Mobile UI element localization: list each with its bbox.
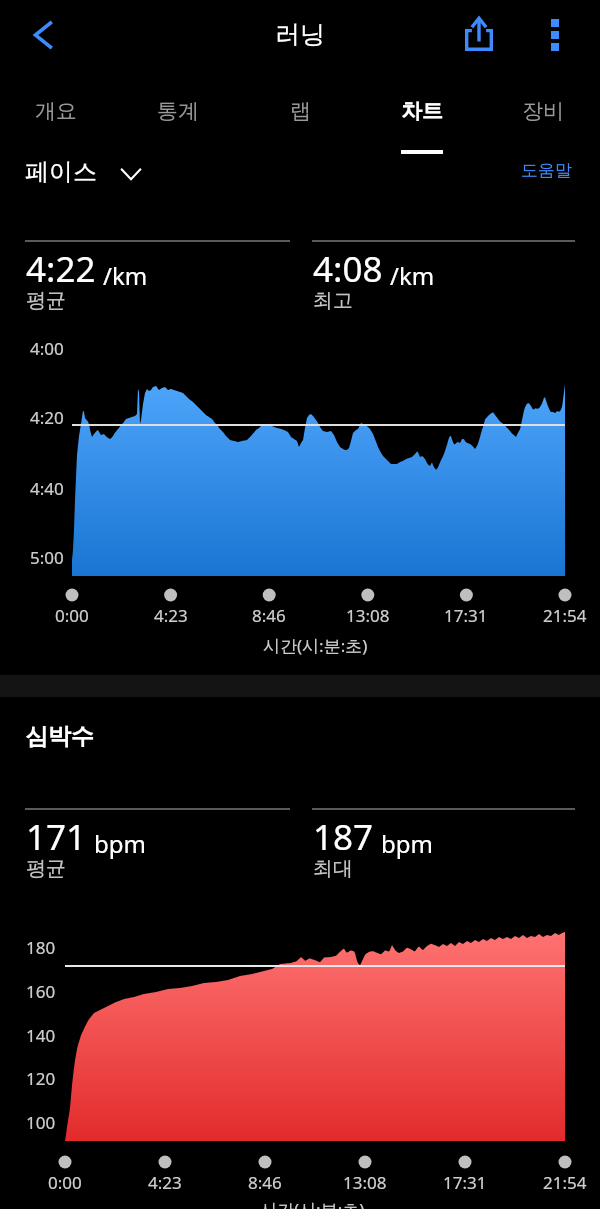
staticText: 최고 [313, 288, 353, 313]
staticText: 페이스 [25, 157, 97, 187]
staticText: bpm [94, 827, 146, 860]
staticText: 4:00 [30, 337, 64, 360]
staticText: /km [103, 259, 148, 292]
button[interactable]: 차트 [364, 72, 480, 130]
staticText: 러닝 [275, 19, 325, 50]
staticText: 평균 [26, 856, 66, 881]
staticText: 개요 [35, 98, 77, 124]
staticText: bpm [381, 827, 433, 860]
button[interactable]: Back [19, 11, 67, 59]
staticText: 심박수 [25, 722, 94, 751]
staticText: 8:46 [252, 604, 286, 627]
staticText: 0:00 [48, 1171, 82, 1194]
button[interactable]: 페이스 [25, 157, 142, 187]
staticText: 시간(시:분:초) [260, 1198, 365, 1209]
staticText: 4:23 [148, 1171, 182, 1194]
staticText: 4:40 [30, 477, 64, 500]
staticText: /km [390, 259, 435, 292]
button[interactable]: Share [455, 10, 503, 58]
button[interactable]: 랩 [242, 72, 358, 130]
button[interactable]: 통계 [120, 72, 236, 130]
staticText: 100 [26, 1111, 56, 1134]
staticText: 171 [26, 813, 87, 861]
staticText: 평균 [26, 288, 66, 313]
staticText: 140 [26, 1024, 56, 1047]
staticText: 최대 [313, 856, 353, 881]
staticText: 4:08 [313, 245, 383, 293]
staticText: 0:00 [55, 604, 89, 627]
staticText: 13:08 [346, 604, 390, 627]
staticText: 8:46 [248, 1171, 282, 1194]
staticText: 4:23 [154, 604, 188, 627]
staticText: 120 [26, 1067, 56, 1090]
staticText: 160 [26, 980, 56, 1003]
staticText: 17:31 [443, 1171, 487, 1194]
staticText: 13:08 [343, 1171, 387, 1194]
staticText: 차트 [401, 98, 443, 124]
button[interactable]: 개요 [0, 72, 114, 130]
staticText: 랩 [290, 98, 311, 124]
staticText: 시간(시:분:초) [263, 634, 368, 657]
staticText: 장비 [522, 98, 564, 124]
button[interactable]: More options [531, 11, 579, 59]
button[interactable]: 도움말 [521, 160, 572, 181]
staticText: 5:00 [30, 546, 64, 569]
button[interactable]: 장비 [485, 72, 600, 130]
staticText: 4:20 [30, 406, 64, 429]
staticText: 21:54 [543, 1171, 587, 1194]
staticText: 4:22 [26, 245, 96, 293]
staticText: 21:54 [543, 604, 587, 627]
staticText: 187 [313, 813, 374, 861]
staticText: 통계 [157, 98, 199, 124]
staticText: 17:31 [444, 604, 488, 627]
staticText: 180 [26, 936, 56, 959]
